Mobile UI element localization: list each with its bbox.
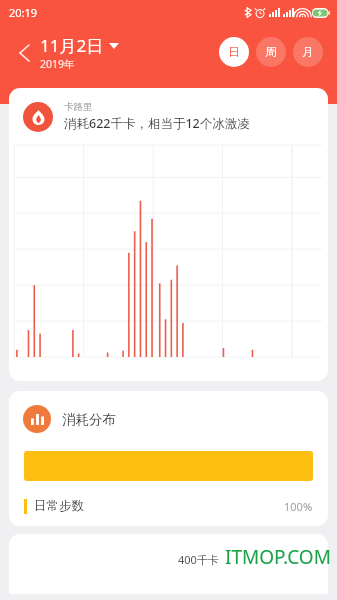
staticText: 周 — [265, 45, 277, 59]
button[interactable]: 月 — [293, 37, 323, 67]
button[interactable]: 日 — [219, 37, 249, 67]
button[interactable]: 卡路里 — [9, 88, 328, 381]
button[interactable]: 消耗分布 — [9, 391, 328, 526]
button[interactable]: 周 — [256, 37, 286, 67]
staticText: 卡路里 — [64, 101, 93, 113]
staticText: 日 — [228, 45, 240, 59]
button[interactable]: 400千卡 — [9, 534, 328, 594]
staticText: 消耗622千卡，相当于12个冰激凌 — [64, 115, 250, 132]
staticText: 400千卡 — [178, 552, 219, 567]
staticText: 20:19 — [9, 5, 38, 20]
staticText: 2019年 — [40, 57, 75, 71]
staticText: 消耗分布 — [62, 411, 116, 428]
staticText: 11月2日 — [40, 34, 104, 57]
button[interactable]: 11月2日 — [40, 34, 119, 71]
staticText: 日常步数 — [34, 498, 84, 514]
staticText: ITMOP.COM — [225, 544, 331, 570]
staticText: 100% — [284, 499, 313, 514]
staticText: 月 — [302, 45, 314, 59]
button[interactable]: Back — [12, 41, 36, 65]
